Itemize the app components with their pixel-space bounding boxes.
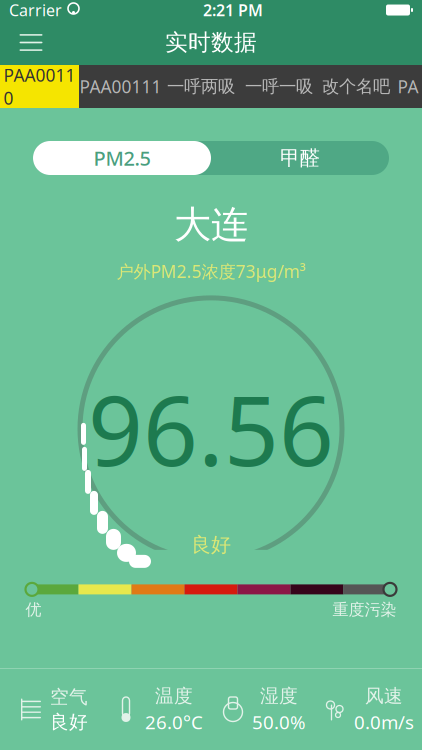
staticText: 户外PM2.5浓度73μg/m³ — [116, 260, 305, 283]
staticText: 大连 — [174, 202, 248, 248]
staticText: 实时数据 — [165, 29, 257, 56]
staticText: 温度 — [155, 685, 193, 707]
staticText: PAA00110 — [3, 63, 75, 109]
button[interactable]: 一呼两吸 — [162, 65, 240, 108]
staticText: 0.0m/s — [354, 710, 414, 734]
staticText: 优 — [25, 600, 41, 620]
staticText: Carrier — [9, 0, 62, 21]
staticText: 改个名吧 — [322, 76, 390, 97]
staticText: 96.56 — [88, 365, 334, 493]
button[interactable]: PM2.5 — [33, 141, 211, 175]
staticText: PA — [397, 75, 418, 98]
staticText: PM2.5 — [93, 145, 150, 171]
staticText: 风速 — [365, 685, 403, 707]
button[interactable]: Menu — [9, 20, 53, 64]
button[interactable]: 一呼一吸 — [240, 65, 318, 108]
staticText: 甲醛 — [280, 146, 320, 170]
staticText: 26.0°C — [145, 710, 203, 734]
staticText: PAA00111 — [79, 75, 161, 98]
button[interactable]: PAA00110 — [0, 65, 79, 108]
staticText: 一呼两吸 — [167, 76, 235, 97]
staticText: 空气 — [50, 686, 88, 708]
button[interactable]: 甲醛 — [211, 141, 389, 175]
button[interactable]: PAA00111 — [79, 65, 162, 108]
staticText: 一呼一吸 — [245, 76, 313, 97]
button[interactable]: PA — [394, 65, 422, 108]
staticText: 湿度 — [260, 685, 298, 707]
button[interactable]: 改个名吧 — [318, 65, 394, 108]
staticText: 2:21 PM — [203, 0, 263, 21]
staticText: 重度污染 — [332, 600, 396, 620]
staticText: 50.0% — [252, 710, 306, 734]
staticText: 良好 — [191, 533, 231, 557]
staticText: 良好 — [50, 710, 88, 733]
